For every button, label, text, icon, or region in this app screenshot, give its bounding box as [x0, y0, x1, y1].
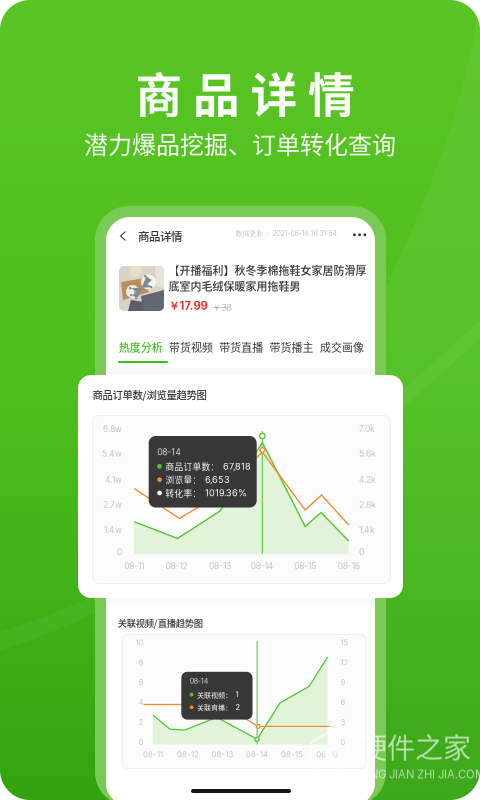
button[interactable]: 带货播主 [266, 335, 318, 359]
staticText: 关联视频/直播趋势图 [118, 616, 203, 629]
staticText: 08-14 [246, 750, 268, 759]
staticText: 2 [235, 703, 240, 712]
staticText: 浏览量： [165, 473, 201, 486]
staticText: 2.8k [359, 499, 376, 510]
staticText: 08-16 [316, 750, 338, 759]
staticText: 08-14 [251, 561, 274, 571]
staticText: 67,818 [223, 461, 251, 472]
staticText: 关联视频： [197, 689, 232, 700]
staticText: 成交画像 [320, 339, 364, 355]
staticText: ￥17.99 [168, 299, 207, 313]
staticText: 08-14 [190, 677, 209, 685]
staticText: 3 [341, 717, 346, 727]
staticText: 带货视频 [169, 339, 213, 355]
staticText: 6 [139, 677, 144, 687]
staticText: 08-15 [294, 561, 316, 571]
staticText: 08-13 [209, 561, 231, 571]
staticText: 08-11 [124, 561, 144, 571]
staticText: 0 [341, 737, 346, 747]
staticText: 2 [139, 717, 144, 727]
button[interactable]: 带货直播 [215, 335, 267, 359]
staticText: 数据更新： 2021-08-16 10:31:54 [235, 229, 336, 238]
staticText: 关联直播： [197, 702, 232, 712]
staticText: 15 [341, 638, 349, 647]
staticText: 商品详情 [135, 58, 355, 126]
staticText: ￥38 [212, 302, 231, 313]
staticText: 2.7w [103, 499, 122, 510]
staticText: 1 [235, 690, 238, 699]
staticText: 5.4w [102, 449, 122, 459]
staticText: 带货直播 [219, 339, 263, 355]
staticText: 08-14 [157, 447, 181, 457]
staticText: 08-11 [143, 750, 163, 759]
staticText: 【开播福利】秋冬季棉拖鞋女家居防滑厚底室内毛绒保暖家用拖鞋男 [168, 262, 366, 294]
staticText: 热度分析 [119, 339, 163, 355]
staticText: 08-15 [281, 750, 303, 759]
staticText: 08-16 [338, 561, 360, 571]
button[interactable]: 更多 [353, 229, 369, 241]
staticText: 6,653 [205, 474, 230, 485]
staticText: 商品订单数： [165, 460, 219, 473]
staticText: 转化率： [165, 487, 201, 499]
staticText: 0 [359, 547, 364, 557]
staticText: 8 [139, 658, 144, 667]
staticText: 4.2k [359, 475, 376, 485]
staticText: 9 [341, 677, 346, 687]
staticText: 08-12 [177, 750, 199, 759]
staticText: 硬件之家 [359, 726, 471, 766]
staticText: 08-12 [165, 561, 187, 571]
staticText: 4 [139, 697, 144, 707]
staticText: 5.6k [359, 449, 376, 459]
staticText: 4.1w [105, 475, 122, 485]
staticText: 商品详情 [138, 228, 182, 244]
staticText: 0 [117, 547, 122, 557]
staticText: 6 [341, 697, 346, 707]
staticText: 1.4k [359, 525, 375, 535]
staticText: 0 [139, 737, 144, 747]
staticText: 1019.36% [205, 487, 247, 498]
staticText: 10 [136, 638, 144, 647]
button[interactable]: 成交画像 [316, 335, 368, 359]
staticText: 6.8w [103, 424, 122, 434]
staticText: 08-13 [211, 750, 233, 759]
button[interactable]: 热度分析 [115, 335, 167, 359]
staticText: 商品订单数/浏览量趋势图 [92, 387, 206, 402]
staticText: 12 [341, 658, 349, 667]
staticText: 潜力爆品挖掘、订单转化查询 [84, 126, 396, 161]
button[interactable]: 带货视频 [165, 335, 217, 359]
staticText: 带货播主 [270, 339, 314, 355]
staticText: 7.0k [359, 424, 375, 434]
staticText: 1.4w [104, 525, 122, 535]
button[interactable]: 返回 商品详情 [117, 224, 237, 248]
staticText: YING JIAN ZHI JIA.COM [359, 767, 480, 781]
